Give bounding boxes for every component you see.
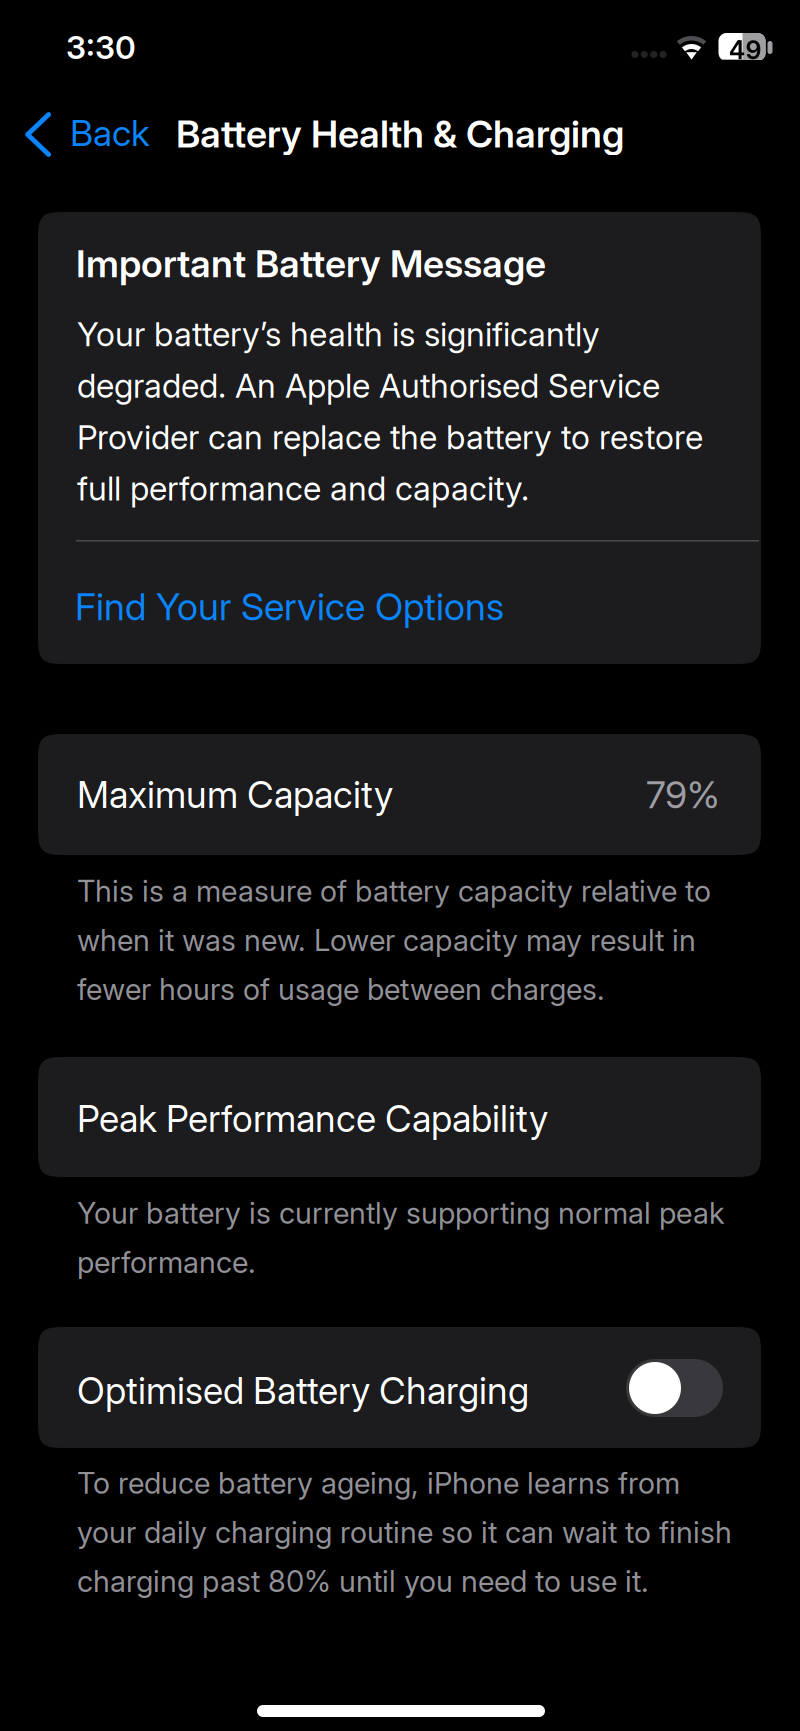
- button[interactable]: Maximum Capacity: [38, 734, 761, 855]
- button[interactable]: Peak Performance Capability: [38, 1057, 761, 1177]
- staticText: 79%: [646, 772, 720, 817]
- staticText: Peak Performance Capability: [77, 1096, 548, 1141]
- staticText: Your battery is currently supporting nor…: [77, 1195, 725, 1280]
- staticText: Find Your Service Options: [75, 584, 504, 629]
- button[interactable]: Back: [22, 102, 162, 162]
- staticText: Your battery’s health is significantly d…: [77, 314, 703, 508]
- staticText: 3:30: [66, 28, 136, 67]
- button[interactable]: Find Your Service Options: [75, 564, 720, 648]
- staticText: Back: [70, 111, 150, 155]
- staticText: This is a measure of battery capacity re…: [77, 873, 711, 1007]
- staticText: Important Battery Message: [76, 241, 546, 286]
- staticText: Battery Health & Charging: [176, 111, 624, 156]
- staticText: 49: [728, 35, 761, 65]
- button[interactable]: Optimised Battery Charging: [626, 1327, 767, 1448]
- staticText: To reduce battery ageing, iPhone learns …: [77, 1465, 732, 1599]
- staticText: Optimised Battery Charging: [77, 1368, 529, 1413]
- staticText: Maximum Capacity: [77, 772, 393, 817]
